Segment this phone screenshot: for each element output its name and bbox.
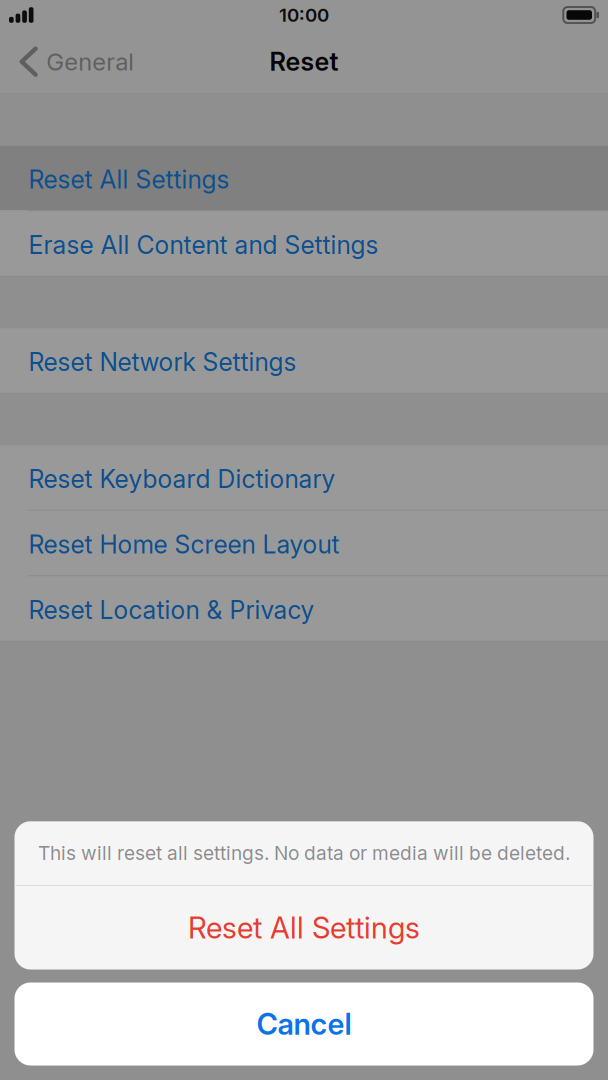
staticText: Reset Keyboard Dictionary: [29, 464, 336, 494]
button[interactable]: Reset All Settings: [14, 886, 593, 969]
button[interactable]: Cancel: [14, 982, 593, 1065]
staticText: Reset Network Settings: [29, 347, 297, 377]
staticText: This will reset all settings. No data or…: [38, 842, 570, 865]
staticText: General: [46, 47, 134, 76]
button[interactable]: Reset Network Settings: [0, 328, 608, 393]
staticText: Reset: [269, 46, 338, 77]
staticText: Reset All Settings: [188, 910, 420, 945]
staticText: 10:00: [279, 4, 329, 26]
staticText: Reset All Settings: [29, 164, 230, 194]
button[interactable]: General: [0, 30, 146, 93]
staticText: Reset Home Screen Layout: [29, 529, 340, 559]
button[interactable]: Reset Keyboard Dictionary: [0, 445, 608, 510]
button[interactable]: Reset Home Screen Layout: [0, 511, 608, 575]
button[interactable]: Erase All Content and Settings: [0, 211, 608, 276]
button[interactable]: Reset Location & Privacy: [0, 576, 608, 641]
button[interactable]: Reset All Settings: [0, 146, 608, 210]
staticText: Erase All Content and Settings: [29, 230, 379, 260]
staticText: Cancel: [256, 1006, 351, 1042]
staticText: Reset Location & Privacy: [29, 595, 315, 625]
